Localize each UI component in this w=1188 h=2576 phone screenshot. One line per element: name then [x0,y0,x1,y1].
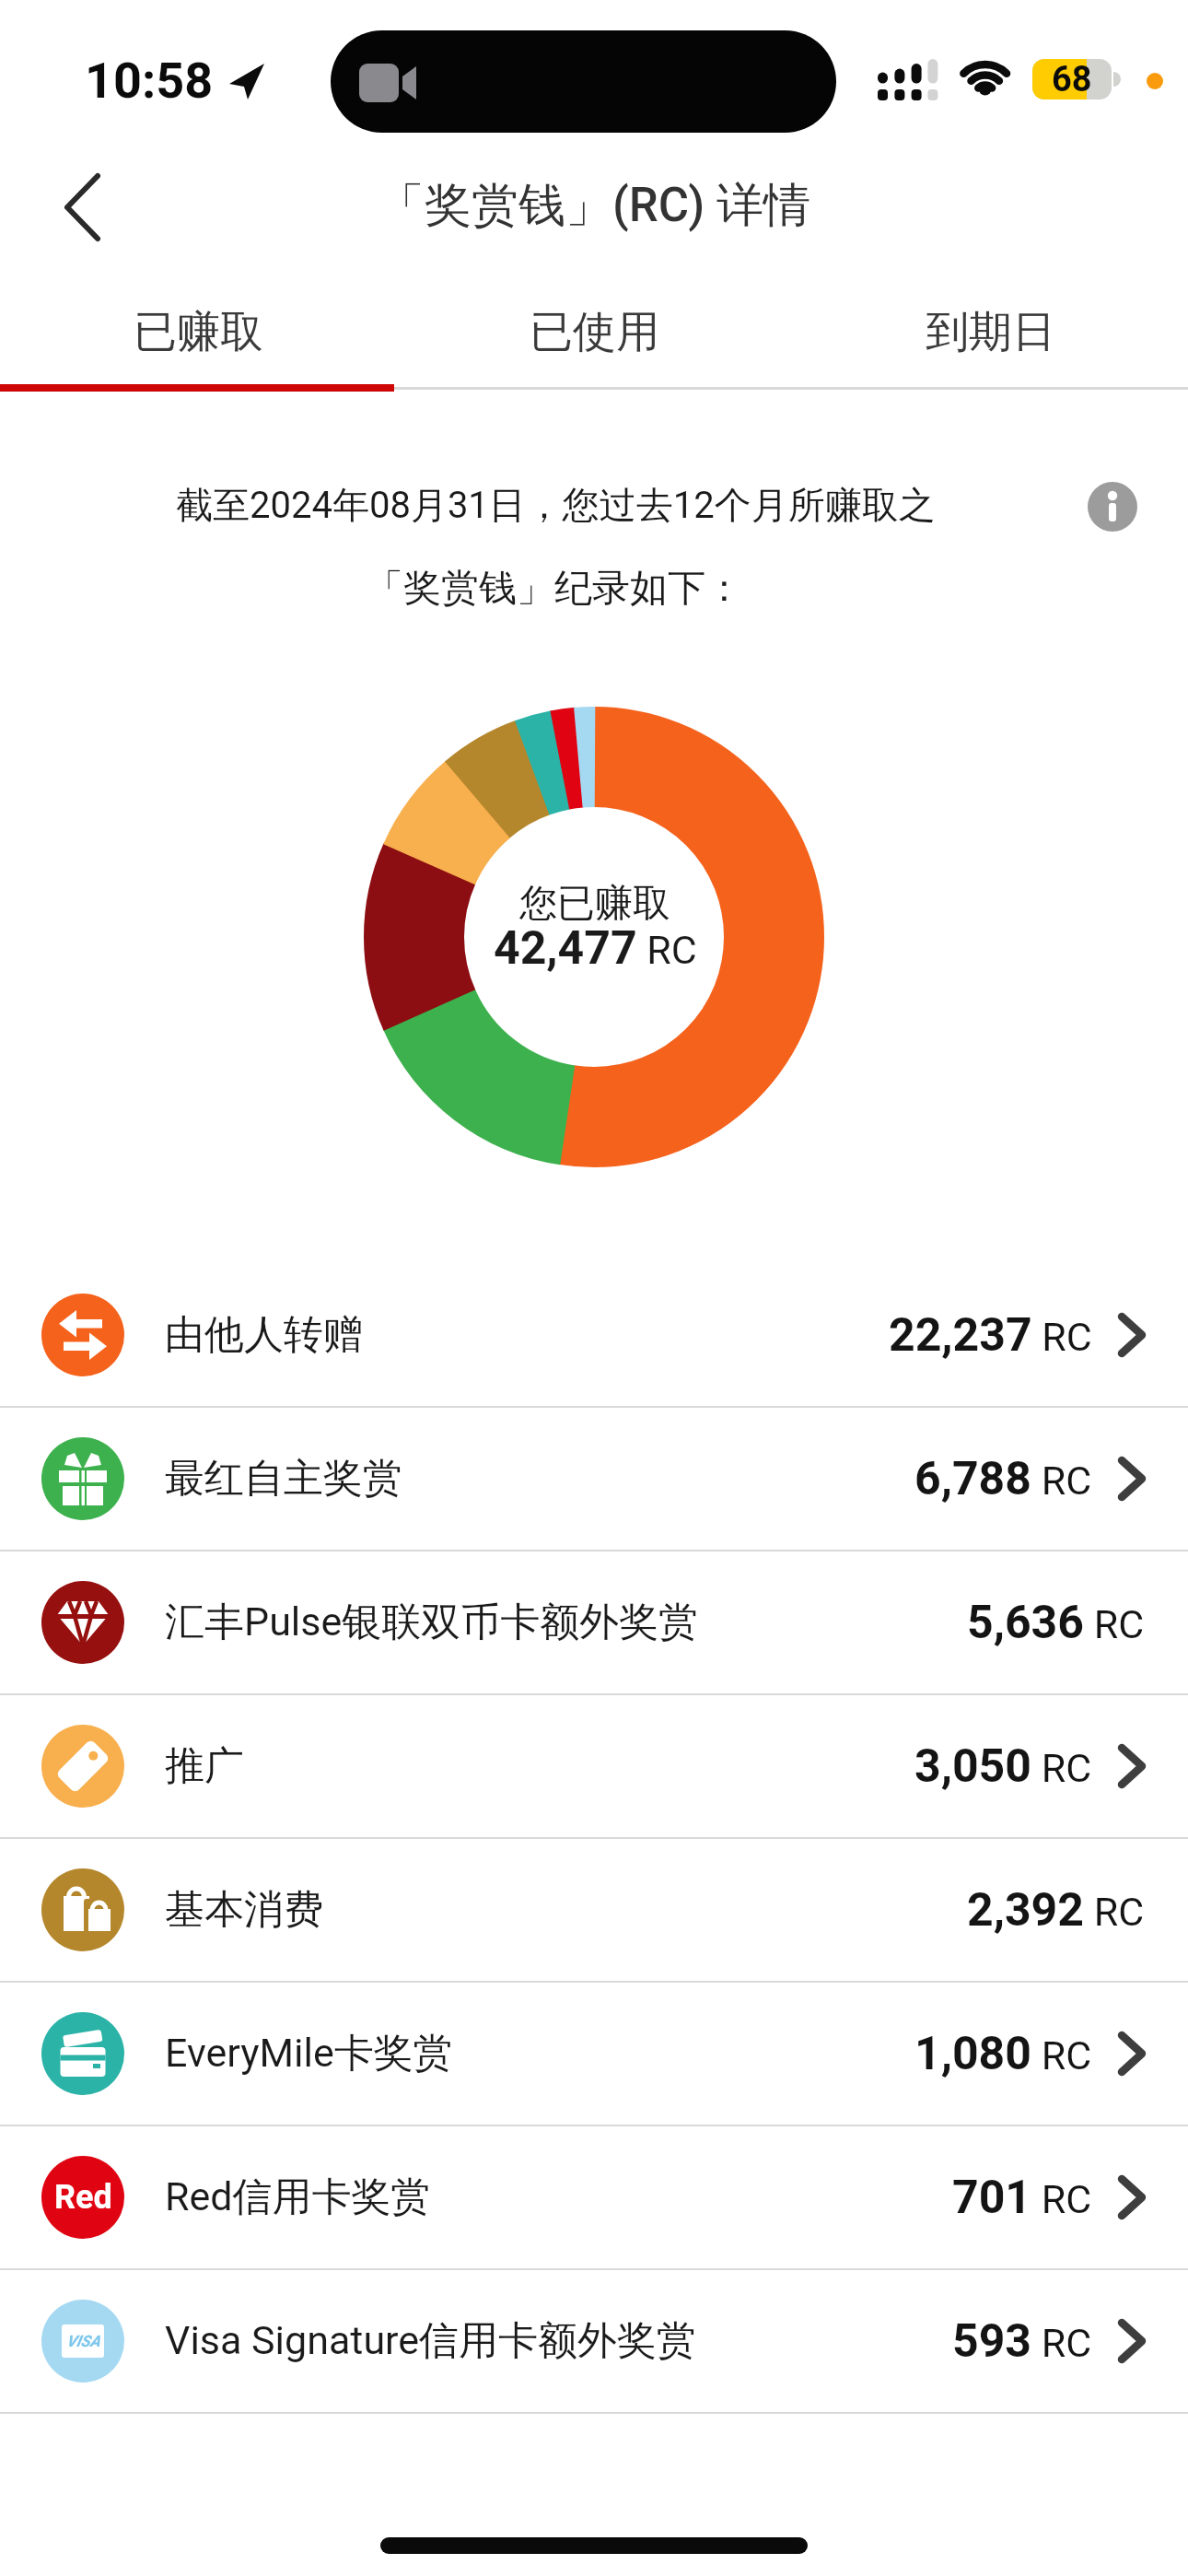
button[interactable]: 汇丰Pulse银联双币卡额外奖赏 [0,1551,1188,1693]
staticText: 593 RC [952,2314,1092,2369]
button[interactable] [55,170,111,244]
staticText: 10:58 [85,52,214,110]
button[interactable]: VISA [0,2270,1188,2412]
staticText: 截至2024年08月31日，您过去12个月所赚取之 [176,482,936,528]
staticText: 2,392 RC [967,1883,1145,1938]
staticText: 基本消费 [165,1885,323,1935]
staticText: 「奖赏钱」纪录如下： [366,565,743,613]
button[interactable]: 基本消费 [0,1839,1188,1981]
button[interactable] [1088,482,1137,532]
staticText: 6,788 RC [914,1452,1092,1506]
button[interactable]: Red [0,2126,1188,2268]
staticText: 42,477 RC [494,921,697,976]
staticText: Visa Signature信用卡额外奖赏 [165,2316,697,2366]
staticText: 由他人转赠 [165,1310,363,1360]
staticText: 「奖赏钱」(RC) 详情 [378,176,811,235]
staticText: 已赚取 [134,305,263,359]
button[interactable]: 推广 [0,1695,1188,1837]
staticText: 3,050 RC [914,1739,1092,1794]
staticText: 最红自主奖赏 [165,1454,402,1504]
staticText: 汇丰Pulse银联双币卡额外奖赏 [165,1598,699,1647]
staticText: 5,636 RC [967,1596,1145,1650]
staticText: 已使用 [530,305,659,359]
staticText: 701 RC [952,2171,1092,2225]
staticText: VISA [66,2332,100,2350]
staticText: 68 [1052,59,1092,100]
button[interactable]: 到期日 [792,276,1188,387]
button[interactable]: 已赚取 [0,276,396,387]
button[interactable]: 已使用 [396,276,792,387]
staticText: Red [54,2178,112,2217]
staticText: 推广 [165,1741,244,1791]
staticText: EveryMile卡奖赏 [165,2029,453,2078]
staticText: Red信用卡奖赏 [165,2172,431,2222]
staticText: 您已赚取 [519,880,670,928]
button[interactable]: EveryMile卡奖赏 [0,1983,1188,2125]
staticText: 22,237 RC [889,1308,1092,1363]
staticText: 1,080 RC [914,2027,1092,2081]
staticText: 到期日 [926,305,1055,359]
button[interactable]: 由他人转赠 [0,1264,1188,1406]
button[interactable]: 最红自主奖赏 [0,1408,1188,1550]
